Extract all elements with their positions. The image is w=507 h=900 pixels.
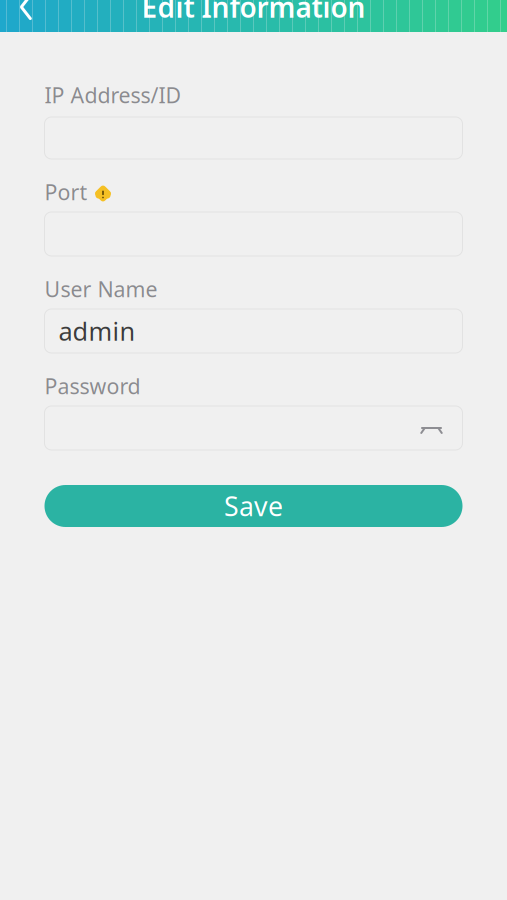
button[interactable]: Back [0,0,52,32]
staticText: Edit Information [141,0,365,26]
staticText: Save [224,488,283,524]
button[interactable]: Show password [416,419,448,437]
staticText: Port [44,178,87,206]
staticText: admin [58,314,135,348]
button[interactable]: Save [44,485,462,527]
staticText: User Name [44,275,157,303]
staticText: Password [44,372,140,400]
staticText: IP Address/ID [44,81,181,109]
